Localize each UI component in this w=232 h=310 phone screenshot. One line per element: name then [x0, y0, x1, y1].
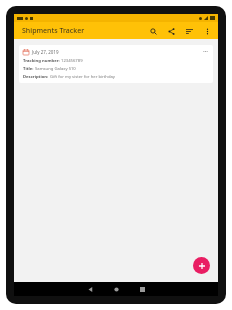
- button[interactable]: July 27, 2019: [19, 45, 213, 83]
- button[interactable]: Add shipment: [193, 257, 210, 274]
- staticText: Gift for my sister for her birthday: [50, 74, 115, 80]
- staticText: 123456789: [61, 58, 83, 64]
- button[interactable]: Share: [165, 25, 177, 37]
- button[interactable]: Back: [77, 282, 103, 296]
- button[interactable]: Item options: [202, 48, 209, 55]
- button[interactable]: Recent apps: [129, 282, 155, 296]
- button[interactable]: More options: [201, 25, 213, 37]
- staticText: Samsung Galaxy S10: [35, 66, 76, 72]
- button[interactable]: Search: [147, 25, 159, 37]
- staticText: Description:: [23, 74, 50, 80]
- button[interactable]: Home: [103, 282, 129, 296]
- staticText: July 27, 2019: [32, 49, 59, 55]
- button[interactable]: Sort: [183, 25, 195, 37]
- staticText: Tracking number:: [23, 58, 61, 64]
- staticText: Title:: [23, 66, 35, 72]
- staticText: Shipments Tracker: [22, 26, 85, 36]
